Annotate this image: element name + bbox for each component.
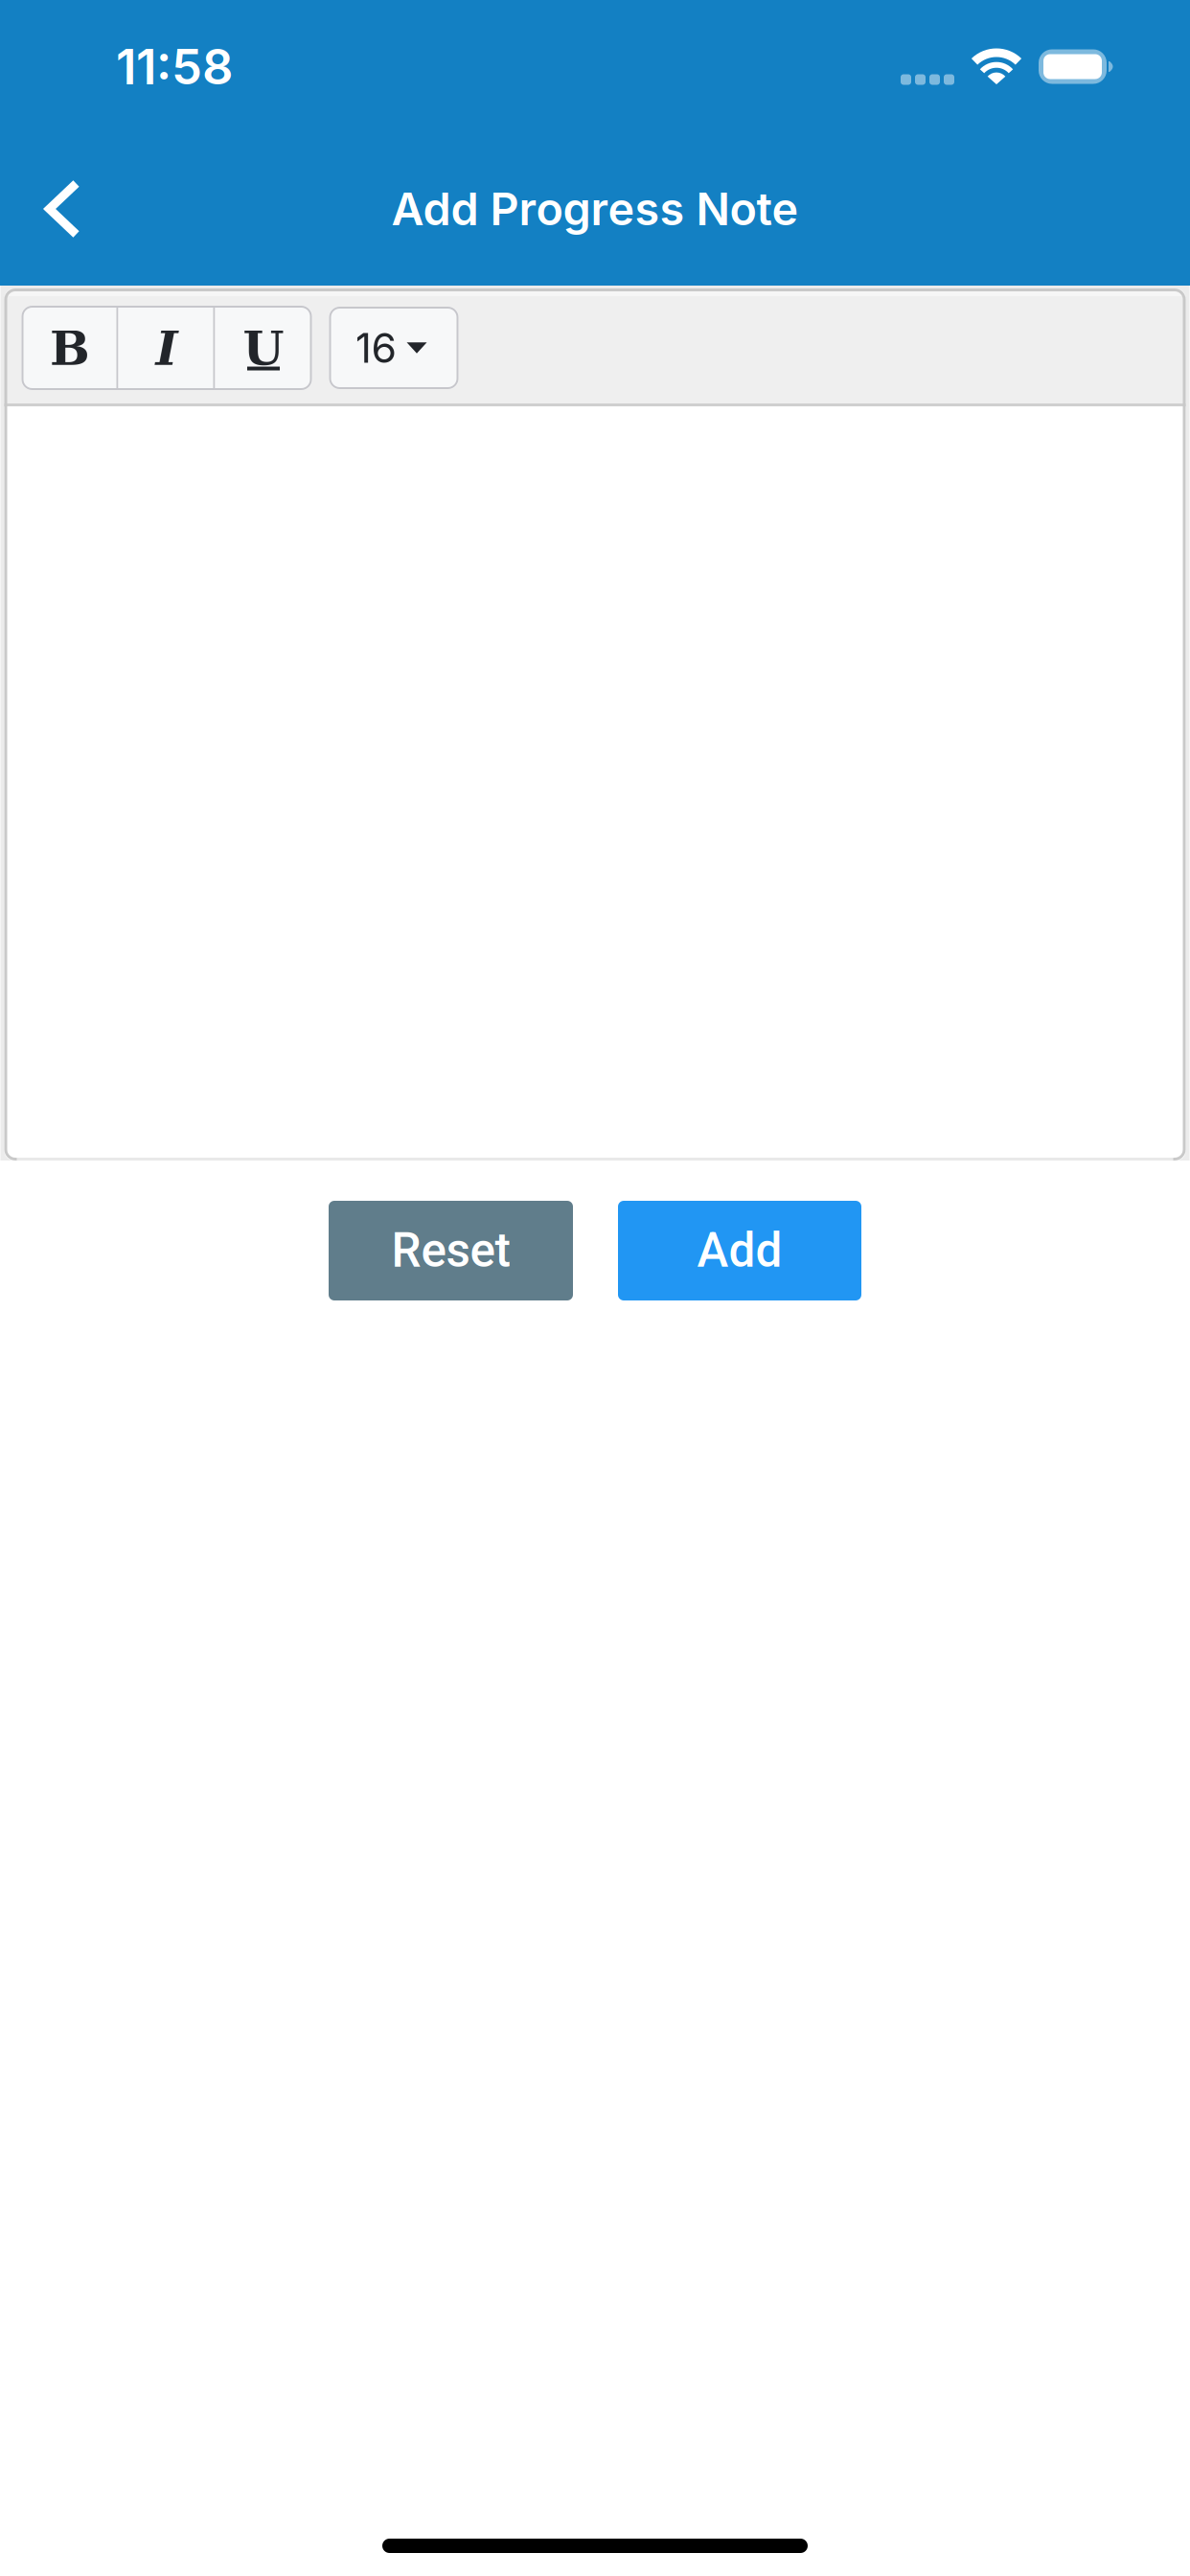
button[interactable]: Back <box>0 155 125 263</box>
staticText: U <box>243 321 284 376</box>
staticText: 11:58 <box>116 37 233 96</box>
button[interactable]: B <box>22 306 118 390</box>
button[interactable]: U <box>215 306 312 390</box>
button[interactable]: 16 <box>329 307 458 389</box>
staticText: 16 <box>355 323 396 373</box>
staticText: Reset <box>391 1223 510 1278</box>
button[interactable]: Reset <box>329 1201 573 1300</box>
staticText: Add <box>697 1223 782 1278</box>
button[interactable]: I <box>118 306 215 390</box>
staticText: Add Progress Note <box>391 182 799 236</box>
staticText: I <box>156 321 178 376</box>
button[interactable]: Add <box>618 1201 861 1300</box>
staticText: B <box>50 321 90 376</box>
